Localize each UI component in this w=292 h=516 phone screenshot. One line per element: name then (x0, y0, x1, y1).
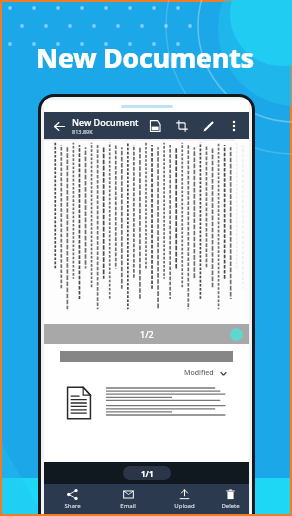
button[interactable]: Share (44, 484, 100, 514)
button[interactable]: 1/1 (123, 466, 171, 480)
staticText: Share (64, 502, 81, 510)
button[interactable]: More options (225, 117, 243, 135)
button[interactable]: Upload (156, 484, 212, 514)
staticText: 1/1 (141, 468, 154, 479)
button[interactable]: PDF (146, 117, 164, 135)
staticText: 1/2 (140, 328, 154, 340)
staticText: Upload (174, 502, 195, 510)
staticText: Delete (221, 502, 240, 510)
staticText: Modified (184, 368, 214, 378)
button[interactable]: Next page (230, 328, 243, 341)
button[interactable]: Modified (184, 368, 227, 378)
staticText: New Document (72, 116, 139, 128)
button[interactable]: Email (100, 484, 156, 514)
staticText: 813.89K (72, 128, 93, 135)
staticText: Email (120, 502, 136, 510)
button[interactable]: Edit (200, 117, 218, 135)
button[interactable]: Delete (212, 484, 249, 514)
button[interactable]: Back (50, 117, 68, 135)
staticText: New Documents (36, 39, 254, 76)
button[interactable]: Crop (173, 117, 191, 135)
